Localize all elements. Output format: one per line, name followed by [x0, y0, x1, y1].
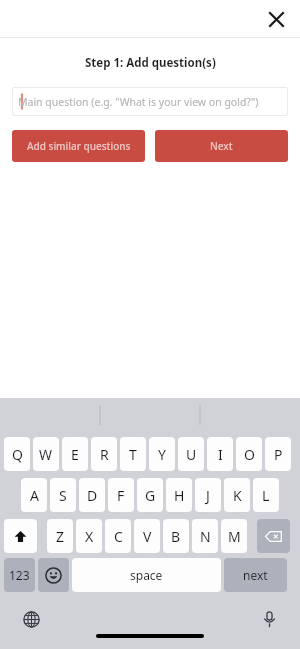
button[interactable]: L — [253, 478, 279, 512]
button[interactable]: C — [105, 519, 131, 553]
button[interactable]: V — [134, 519, 160, 553]
button[interactable]: E — [62, 437, 88, 471]
staticText: Step 1: Add question(s) — [85, 55, 216, 71]
staticText: V — [143, 527, 152, 546]
button[interactable]: N — [192, 519, 218, 553]
staticText: T — [129, 445, 137, 464]
staticText: X — [85, 527, 94, 546]
staticText: 123 — [9, 567, 30, 583]
staticText: space — [130, 567, 163, 583]
button[interactable]: next — [224, 558, 287, 592]
button[interactable]: Y — [149, 437, 175, 471]
staticText: Z — [56, 527, 65, 546]
button[interactable]: G — [137, 478, 163, 512]
button[interactable]: Backspace — [257, 519, 290, 553]
button[interactable]: Main question (e.g. "What is your view o… — [12, 87, 288, 116]
button[interactable]: J — [195, 478, 221, 512]
button[interactable]: space — [72, 558, 221, 592]
button[interactable]: K — [224, 478, 250, 512]
button[interactable]: Add similar questions — [12, 130, 145, 162]
staticText: P — [274, 445, 283, 464]
staticText: Q — [12, 445, 23, 464]
button[interactable]: H — [166, 478, 192, 512]
staticText: F — [117, 486, 125, 505]
staticText: Next — [210, 139, 233, 153]
button[interactable]: I — [207, 437, 233, 471]
button[interactable]: T — [120, 437, 146, 471]
button[interactable]: X — [76, 519, 102, 553]
button[interactable]: A — [21, 478, 47, 512]
staticText: L — [262, 486, 270, 505]
button[interactable]: Q — [4, 437, 30, 471]
button[interactable]: B — [163, 519, 189, 553]
staticText: E — [71, 445, 79, 464]
staticText: O — [244, 445, 255, 464]
staticText: D — [87, 486, 98, 505]
button[interactable]: 123 — [4, 558, 35, 592]
button[interactable]: P — [265, 437, 291, 471]
button[interactable]: Emoji — [38, 558, 69, 592]
button[interactable]: Voice input — [255, 605, 283, 633]
staticText: H — [174, 486, 185, 505]
staticText: W — [39, 445, 53, 464]
staticText: C — [114, 527, 123, 546]
staticText: G — [145, 486, 156, 505]
staticText: J — [206, 486, 210, 505]
button[interactable]: F — [108, 478, 134, 512]
button[interactable]: Shift — [4, 519, 37, 553]
button[interactable]: M — [221, 519, 247, 553]
staticText: R — [100, 445, 109, 464]
staticText: B — [171, 527, 181, 546]
button[interactable]: O — [236, 437, 262, 471]
staticText: next — [243, 567, 268, 583]
staticText: M — [228, 527, 241, 546]
button[interactable]: S — [50, 478, 76, 512]
button[interactable]: U — [178, 437, 204, 471]
staticText: I — [218, 445, 223, 464]
staticText: U — [186, 445, 197, 464]
button[interactable]: R — [91, 437, 117, 471]
button[interactable]: D — [79, 478, 105, 512]
staticText: A — [30, 486, 39, 505]
staticText: S — [59, 486, 67, 505]
button[interactable]: Z — [47, 519, 73, 553]
button[interactable]: Change keyboard language — [17, 605, 45, 633]
button[interactable]: Next — [155, 130, 288, 162]
button[interactable]: W — [33, 437, 59, 471]
staticText: Y — [158, 445, 166, 464]
staticText: Add similar questions — [27, 139, 131, 153]
staticText: Main question (e.g. "What is your view o… — [18, 95, 259, 109]
button[interactable]: Close — [261, 4, 291, 34]
staticText: K — [233, 486, 242, 505]
staticText: N — [200, 527, 211, 546]
